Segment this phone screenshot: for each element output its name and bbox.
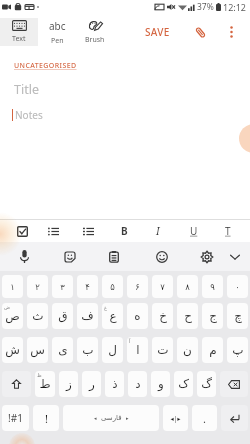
button[interactable]: ◂|▸ xyxy=(163,405,188,431)
staticText: ۲ xyxy=(35,282,40,292)
staticText: Title xyxy=(14,81,39,98)
button[interactable]: ص xyxy=(2,303,23,329)
staticText: ب xyxy=(82,343,94,357)
button[interactable]: ! xyxy=(33,405,59,431)
button[interactable]: abc xyxy=(38,18,76,46)
staticText: غ xyxy=(104,304,107,310)
staticText: ◂ xyxy=(94,415,97,421)
button[interactable]: ب xyxy=(77,337,98,363)
button[interactable]: Italic xyxy=(144,220,172,242)
button[interactable]: ۱ xyxy=(2,275,23,298)
button[interactable]: Clipboard xyxy=(100,242,128,271)
button[interactable]: پ xyxy=(227,337,248,363)
staticText: ک xyxy=(178,377,189,391)
button[interactable]: SAVE xyxy=(139,17,176,47)
staticText: ص xyxy=(5,309,20,323)
button[interactable]: Emoji xyxy=(148,242,176,271)
button[interactable]: ۸ xyxy=(177,275,198,298)
button[interactable]: UNCATEGORISED xyxy=(14,61,77,71)
button[interactable]: Collapse keyboard xyxy=(221,242,249,271)
staticText: 12:12 xyxy=(223,1,247,13)
button[interactable]: Settings xyxy=(193,242,221,271)
button[interactable]: چ xyxy=(227,303,248,329)
button[interactable]: ق xyxy=(52,303,73,329)
button[interactable]: Key xyxy=(2,371,31,397)
button[interactable]: New note xyxy=(239,124,250,153)
button[interactable]: Underline xyxy=(180,220,208,242)
staticText: . xyxy=(203,411,206,426)
button[interactable]: Key xyxy=(220,371,248,397)
staticText: B xyxy=(121,224,128,238)
button[interactable]: !#1 xyxy=(2,405,29,431)
button[interactable]: ۵ xyxy=(102,275,123,298)
button[interactable]: More options xyxy=(220,21,242,43)
button[interactable]: م xyxy=(202,337,223,363)
staticText: پ xyxy=(232,343,244,357)
button[interactable]: Text xyxy=(0,18,38,46)
button[interactable]: ش xyxy=(2,337,23,363)
button[interactable]: و xyxy=(151,371,170,397)
button[interactable]: ع xyxy=(102,303,123,329)
button[interactable]: گ xyxy=(197,371,216,397)
button[interactable]: ذ xyxy=(105,371,124,397)
staticText: چ xyxy=(234,309,242,323)
staticText: ع xyxy=(109,309,117,323)
staticText: ح xyxy=(184,309,192,323)
staticText: abc xyxy=(49,19,66,33)
staticText: ۴ xyxy=(85,282,90,292)
button[interactable]: ح xyxy=(177,303,198,329)
button[interactable]: ۰ xyxy=(227,275,248,298)
button[interactable]: Brush xyxy=(76,18,114,46)
button[interactable]: Bullet list xyxy=(39,220,67,242)
button[interactable]: Numbered list xyxy=(74,220,102,242)
staticText: ۵ xyxy=(110,282,115,292)
staticText: 37% xyxy=(197,1,214,13)
staticText: م xyxy=(209,343,217,357)
staticText: ر xyxy=(89,377,95,391)
button[interactable]: Stickers xyxy=(56,242,84,271)
staticText: I xyxy=(156,224,160,238)
button[interactable]: Text colour xyxy=(214,220,242,242)
button[interactable]: ۷ xyxy=(152,275,173,298)
button[interactable]: Checklist xyxy=(8,220,36,242)
button[interactable]: ۶ xyxy=(127,275,148,298)
button[interactable]: د xyxy=(128,371,147,397)
button[interactable]: ۲ xyxy=(27,275,48,298)
button[interactable]: ه xyxy=(127,303,148,329)
staticText: ▸ xyxy=(126,415,129,421)
button[interactable]: ا xyxy=(127,337,148,363)
button[interactable]: ت xyxy=(152,337,173,363)
button[interactable]: ث xyxy=(27,303,48,329)
button[interactable]: ف xyxy=(77,303,98,329)
button[interactable]: Key xyxy=(221,405,248,431)
button[interactable]: ل xyxy=(102,337,123,363)
staticText: ت xyxy=(157,343,169,357)
button[interactable]: ج xyxy=(202,303,223,329)
button[interactable]: ط xyxy=(35,371,55,397)
button[interactable]: س xyxy=(27,337,48,363)
button[interactable]: ی xyxy=(52,337,73,363)
staticText: س xyxy=(30,343,45,357)
button[interactable]: ک xyxy=(174,371,193,397)
staticText: آ xyxy=(129,338,131,344)
staticText: ض xyxy=(4,304,11,310)
staticText: ۱ xyxy=(10,282,15,292)
button[interactable]: ز xyxy=(59,371,78,397)
button[interactable]: ر xyxy=(82,371,101,397)
button[interactable]: ۳ xyxy=(52,275,73,298)
button[interactable]: . xyxy=(192,405,217,431)
staticText: SAVE xyxy=(145,25,170,39)
button[interactable]: ن xyxy=(177,337,198,363)
staticText: ث xyxy=(32,309,44,323)
staticText: ز xyxy=(66,377,72,391)
button[interactable]: ۹ xyxy=(202,275,223,298)
button[interactable]: Bold xyxy=(110,220,138,242)
button[interactable]: Space xyxy=(63,405,159,431)
button[interactable]: Voice input xyxy=(10,242,38,271)
button[interactable]: Attach xyxy=(189,21,211,43)
staticText: ۰ xyxy=(235,282,240,292)
staticText: ش xyxy=(5,343,20,357)
button[interactable]: خ xyxy=(152,303,173,329)
button[interactable]: ۴ xyxy=(77,275,98,298)
staticText: د xyxy=(135,377,141,391)
